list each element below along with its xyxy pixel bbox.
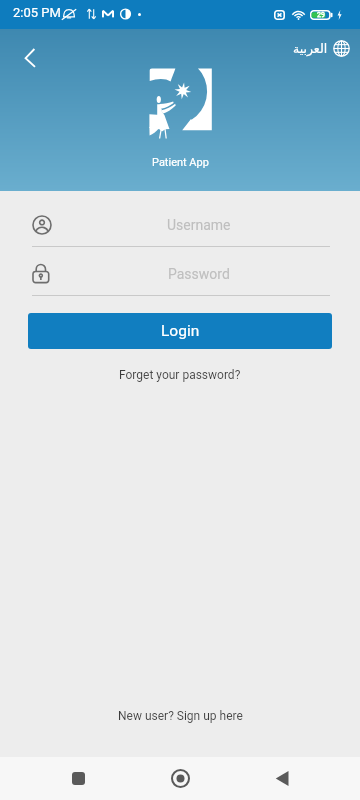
staticText: Username — [167, 217, 231, 233]
button[interactable]: New user? Sign up here — [112, 705, 249, 727]
button[interactable]: Home — [156, 757, 204, 800]
button[interactable]: Forget your password? — [113, 364, 247, 386]
staticText: 2:05 PM — [13, 5, 61, 20]
staticText: Password — [168, 266, 230, 282]
staticText: Login — [161, 322, 200, 340]
button[interactable]: Login — [28, 313, 332, 349]
staticText: Forget your password? — [119, 368, 241, 382]
staticText: New user? Sign up here — [118, 709, 243, 723]
button[interactable]: Back — [14, 35, 46, 67]
button[interactable]: Password — [32, 252, 330, 296]
staticText: 29 — [317, 11, 325, 19]
staticText: العربية — [293, 41, 328, 56]
button[interactable]: Back — [258, 757, 306, 800]
button[interactable]: Recents — [54, 757, 102, 800]
button[interactable]: Username — [32, 203, 330, 247]
staticText: Patient App — [152, 156, 209, 169]
button[interactable]: العربية — [291, 38, 352, 59]
